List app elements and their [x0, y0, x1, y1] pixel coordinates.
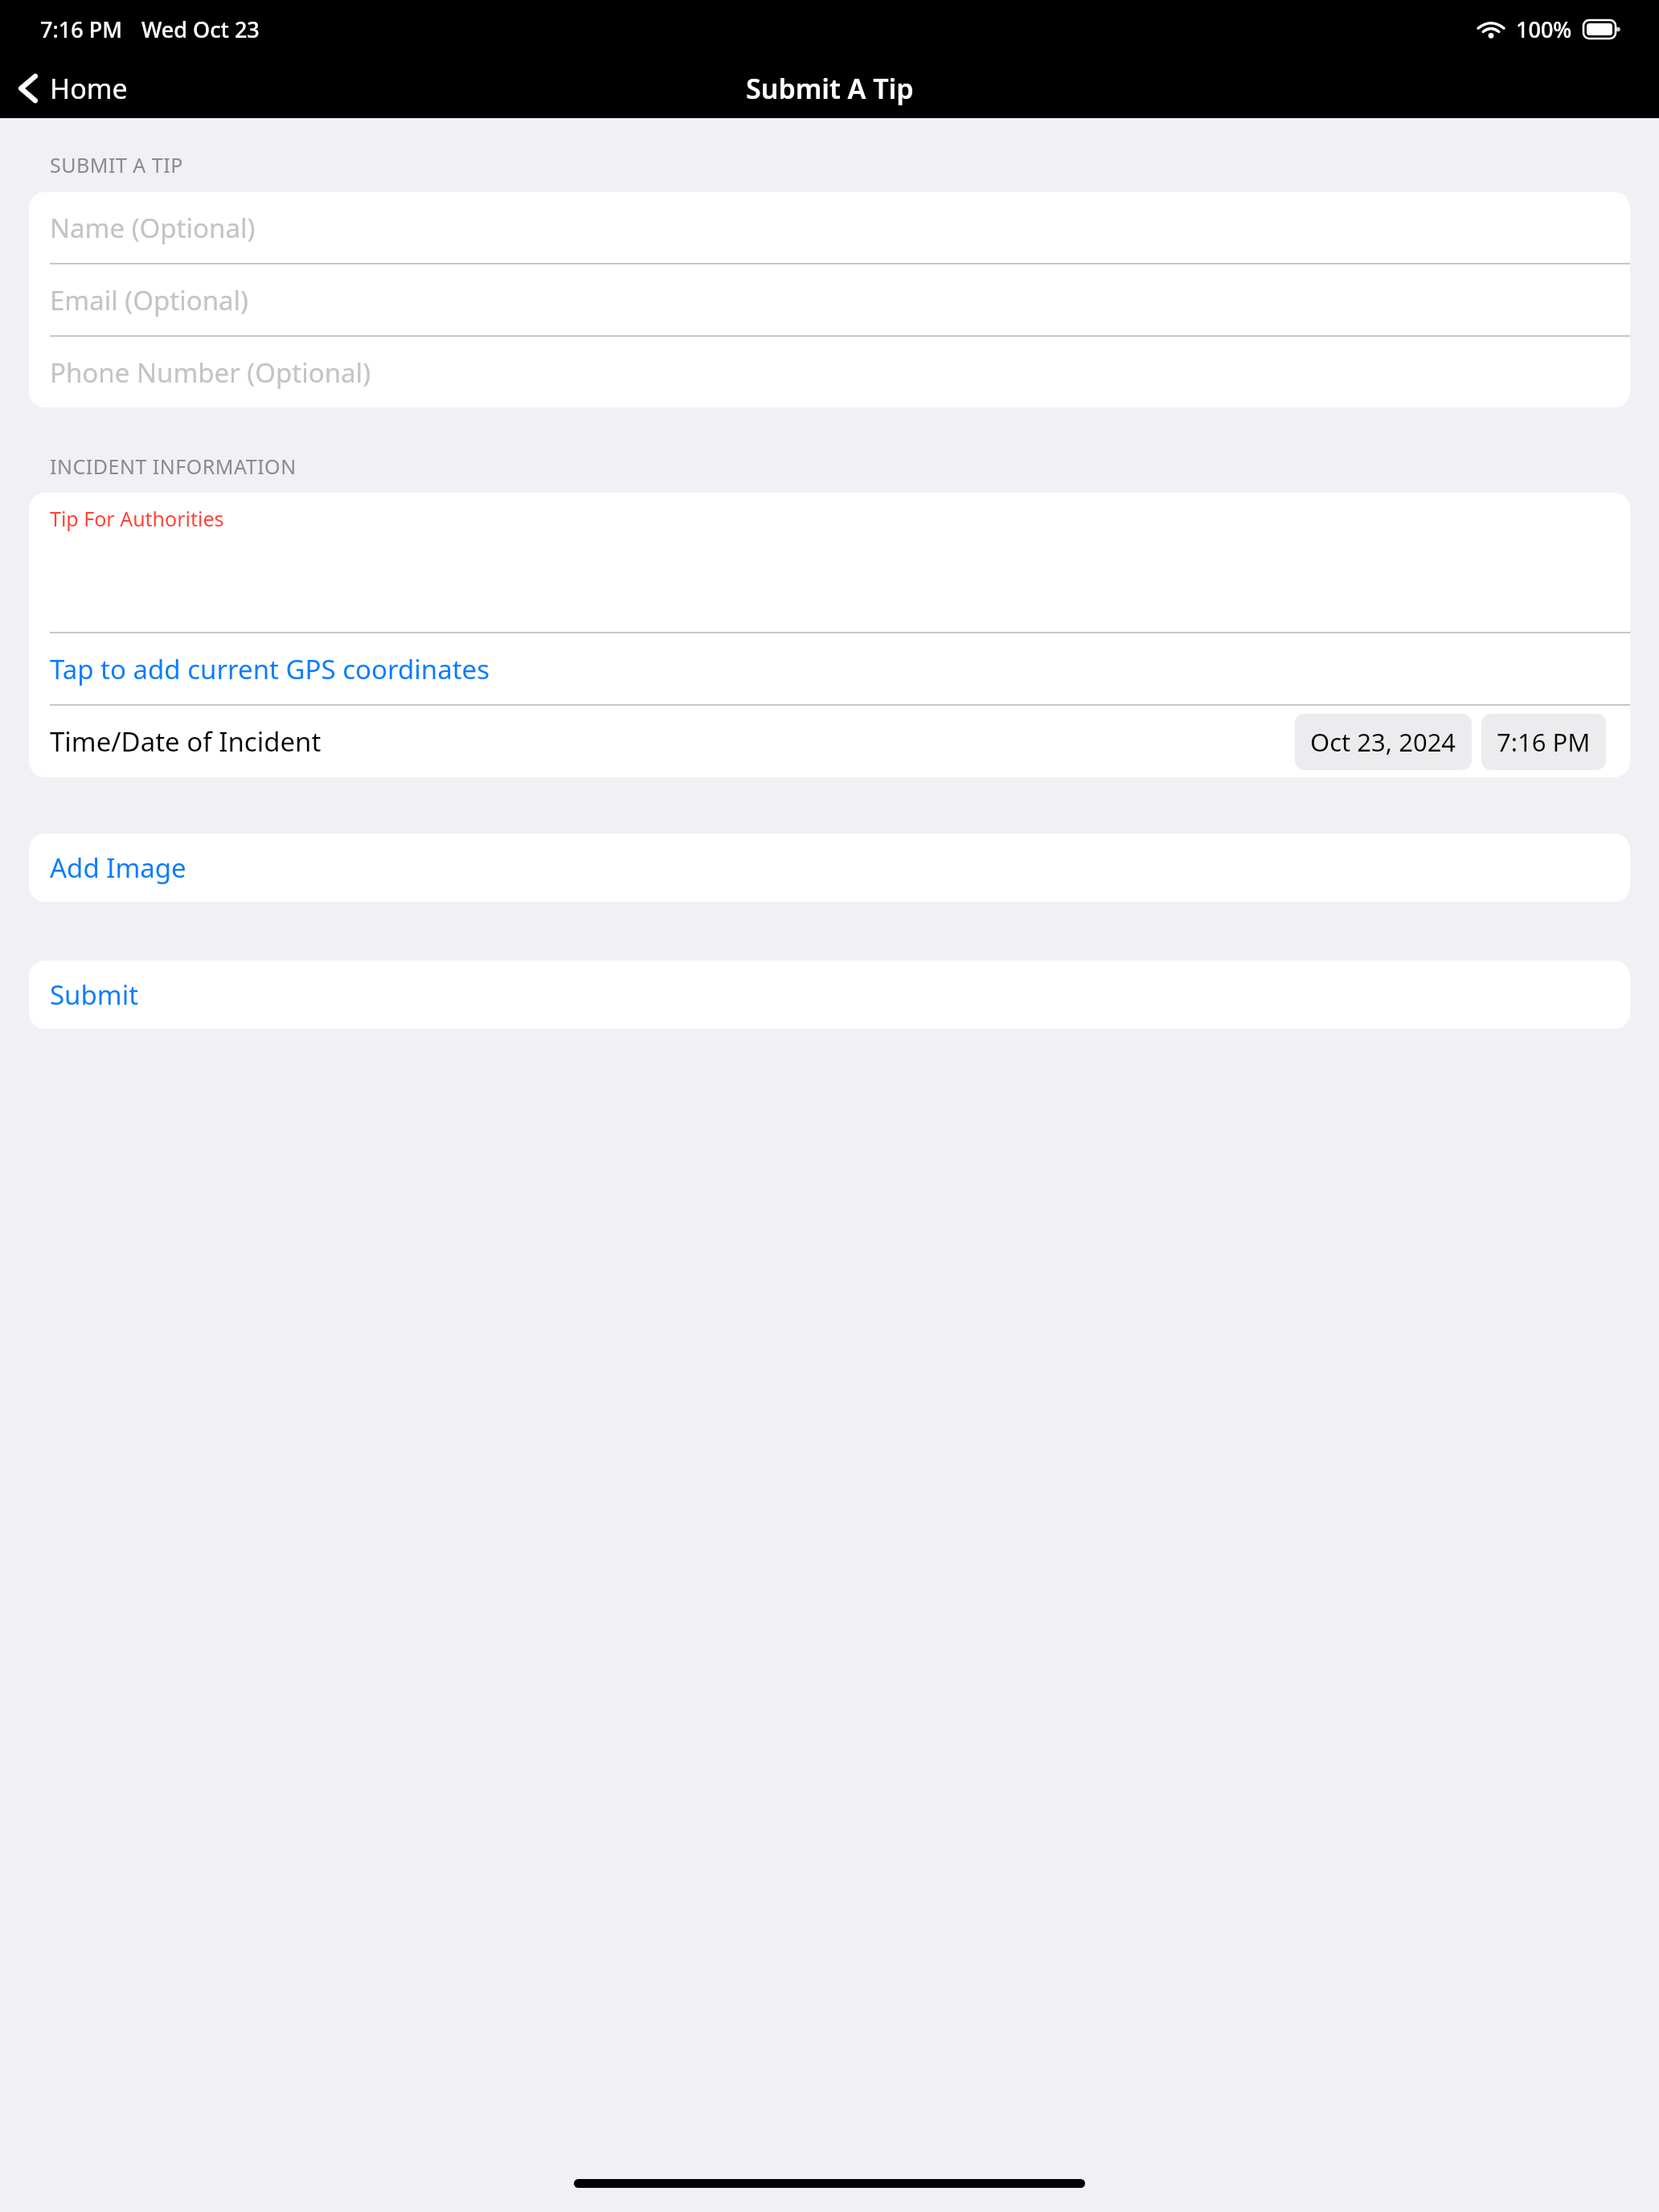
- staticText: 100%: [1516, 14, 1572, 44]
- button[interactable]: Tap to add current GPS coordinates: [29, 633, 1630, 704]
- staticText: Name (Optional): [50, 210, 256, 246]
- staticText: Home: [50, 70, 128, 107]
- staticText: Tap to add current GPS coordinates: [50, 651, 490, 687]
- button[interactable]: Home: [0, 62, 142, 115]
- button[interactable]: Time/Date of Incident: [29, 706, 1630, 777]
- button[interactable]: Oct 23, 2024: [1295, 714, 1472, 770]
- button[interactable]: Tip For Authorities: [29, 493, 1630, 632]
- staticText: SUBMIT A TIP: [50, 151, 183, 178]
- button[interactable]: Submit: [29, 961, 1630, 1029]
- staticText: Submit A Tip: [746, 70, 914, 107]
- other: Wi-Fi: [1477, 19, 1505, 40]
- staticText: Submit: [50, 977, 139, 1013]
- staticText: Tip For Authorities: [50, 505, 224, 532]
- button[interactable]: Name (Optional): [29, 192, 1630, 263]
- button[interactable]: Phone Number (Optional): [29, 337, 1630, 408]
- staticText: Oct 23, 2024: [1310, 725, 1456, 759]
- staticText: 7:16 PM: [40, 14, 122, 44]
- other: Battery 100 percent: [1583, 20, 1620, 39]
- staticText: Time/Date of Incident: [50, 723, 322, 760]
- staticText: INCIDENT INFORMATION: [50, 453, 297, 480]
- button[interactable]: 7:16 PM: [1481, 714, 1606, 770]
- staticText: Add Image: [50, 850, 186, 886]
- staticText: Wed Oct 23: [141, 14, 260, 44]
- button[interactable]: Email (Optional): [29, 264, 1630, 335]
- button[interactable]: Add Image: [29, 834, 1630, 902]
- staticText: Phone Number (Optional): [50, 354, 371, 391]
- staticText: Email (Optional): [50, 282, 249, 318]
- staticText: 7:16 PM: [1497, 725, 1591, 759]
